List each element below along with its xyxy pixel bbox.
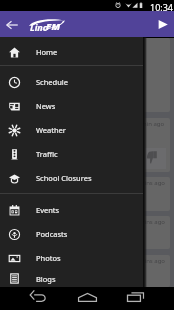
button[interactable]: Podcasts xyxy=(0,222,143,246)
button[interactable]: Schedule xyxy=(0,70,143,94)
button[interactable]: Recents xyxy=(125,289,147,307)
staticText: 1 min ago xyxy=(136,120,165,128)
button[interactable]: 1 min ago xyxy=(6,118,170,172)
staticText: Schedule xyxy=(36,77,68,87)
button[interactable]: Photos xyxy=(0,246,143,270)
button[interactable]: Traffic xyxy=(0,142,143,166)
staticText: mins ago xyxy=(139,257,165,265)
staticText: School Closures xyxy=(36,173,92,183)
button[interactable]: mins ago xyxy=(6,177,170,211)
staticText: News xyxy=(36,101,56,111)
button[interactable]: Blogs xyxy=(0,270,143,287)
button[interactable]: mins ago xyxy=(6,255,170,287)
staticText: Traffic xyxy=(36,149,58,159)
staticText: Linc xyxy=(30,21,48,33)
staticText: mins ago xyxy=(139,179,165,187)
staticText: Home xyxy=(36,47,58,57)
button[interactable]: News xyxy=(0,94,143,118)
button[interactable] xyxy=(6,38,170,112)
button[interactable]: Home xyxy=(0,40,143,64)
staticText: Weather xyxy=(36,125,66,135)
button[interactable]: Weather xyxy=(0,118,143,142)
staticText: 10:34 xyxy=(150,1,174,12)
button[interactable]: Home xyxy=(76,289,99,307)
staticText: Blogs xyxy=(36,274,56,284)
staticText: FM xyxy=(46,20,61,33)
staticText: Podcasts xyxy=(36,229,68,239)
button[interactable]: mins ago xyxy=(6,216,170,249)
button[interactable]: Events xyxy=(0,198,143,222)
staticText: Events xyxy=(36,205,60,215)
button[interactable]: Back xyxy=(26,289,50,307)
button[interactable]: Play xyxy=(147,11,173,37)
staticText: Photos xyxy=(36,253,61,263)
staticText: mins ago xyxy=(139,218,165,226)
button[interactable]: School Closures xyxy=(0,166,143,190)
button[interactable]: Back xyxy=(0,12,24,36)
